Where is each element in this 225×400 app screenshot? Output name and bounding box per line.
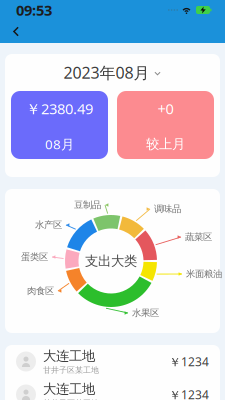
staticText: 2023年08月 bbox=[63, 62, 149, 83]
staticText: 水果区 bbox=[132, 307, 159, 319]
staticText: 调味品 bbox=[154, 203, 181, 215]
staticText: 甘井子区某工地 bbox=[43, 398, 99, 400]
staticText: 甘井子区某工地 bbox=[43, 365, 99, 375]
button[interactable]: 返回 bbox=[0, 20, 27, 42]
button[interactable]: 大连工地 bbox=[5, 345, 220, 378]
staticText: 大连工地 bbox=[43, 381, 95, 397]
staticText: 豆制品 bbox=[74, 199, 101, 211]
button[interactable]: 大连工地 bbox=[5, 378, 220, 400]
staticText: 大连工地 bbox=[43, 348, 95, 364]
staticText: 较上月 bbox=[146, 136, 185, 152]
button[interactable]: +0 bbox=[117, 91, 214, 159]
staticText: ￥2380.49 bbox=[26, 99, 93, 118]
staticText: +0 bbox=[157, 99, 173, 118]
staticText: 09:53 bbox=[16, 0, 52, 20]
staticText: 蔬菜区 bbox=[185, 231, 212, 243]
staticText: ￥1234 bbox=[169, 353, 209, 369]
staticText: ￥1234 bbox=[169, 386, 209, 400]
button[interactable]: ￥2380.49 bbox=[11, 91, 108, 159]
staticText: 米面粮油 bbox=[186, 268, 222, 280]
button[interactable]: 2023年08月 bbox=[5, 54, 220, 91]
staticText: 蛋类区 bbox=[21, 251, 48, 263]
staticText: 08月 bbox=[45, 135, 74, 153]
staticText: 水产区 bbox=[35, 219, 62, 231]
staticText: 支出大类 bbox=[85, 253, 137, 269]
staticText: 肉食区 bbox=[27, 285, 54, 297]
